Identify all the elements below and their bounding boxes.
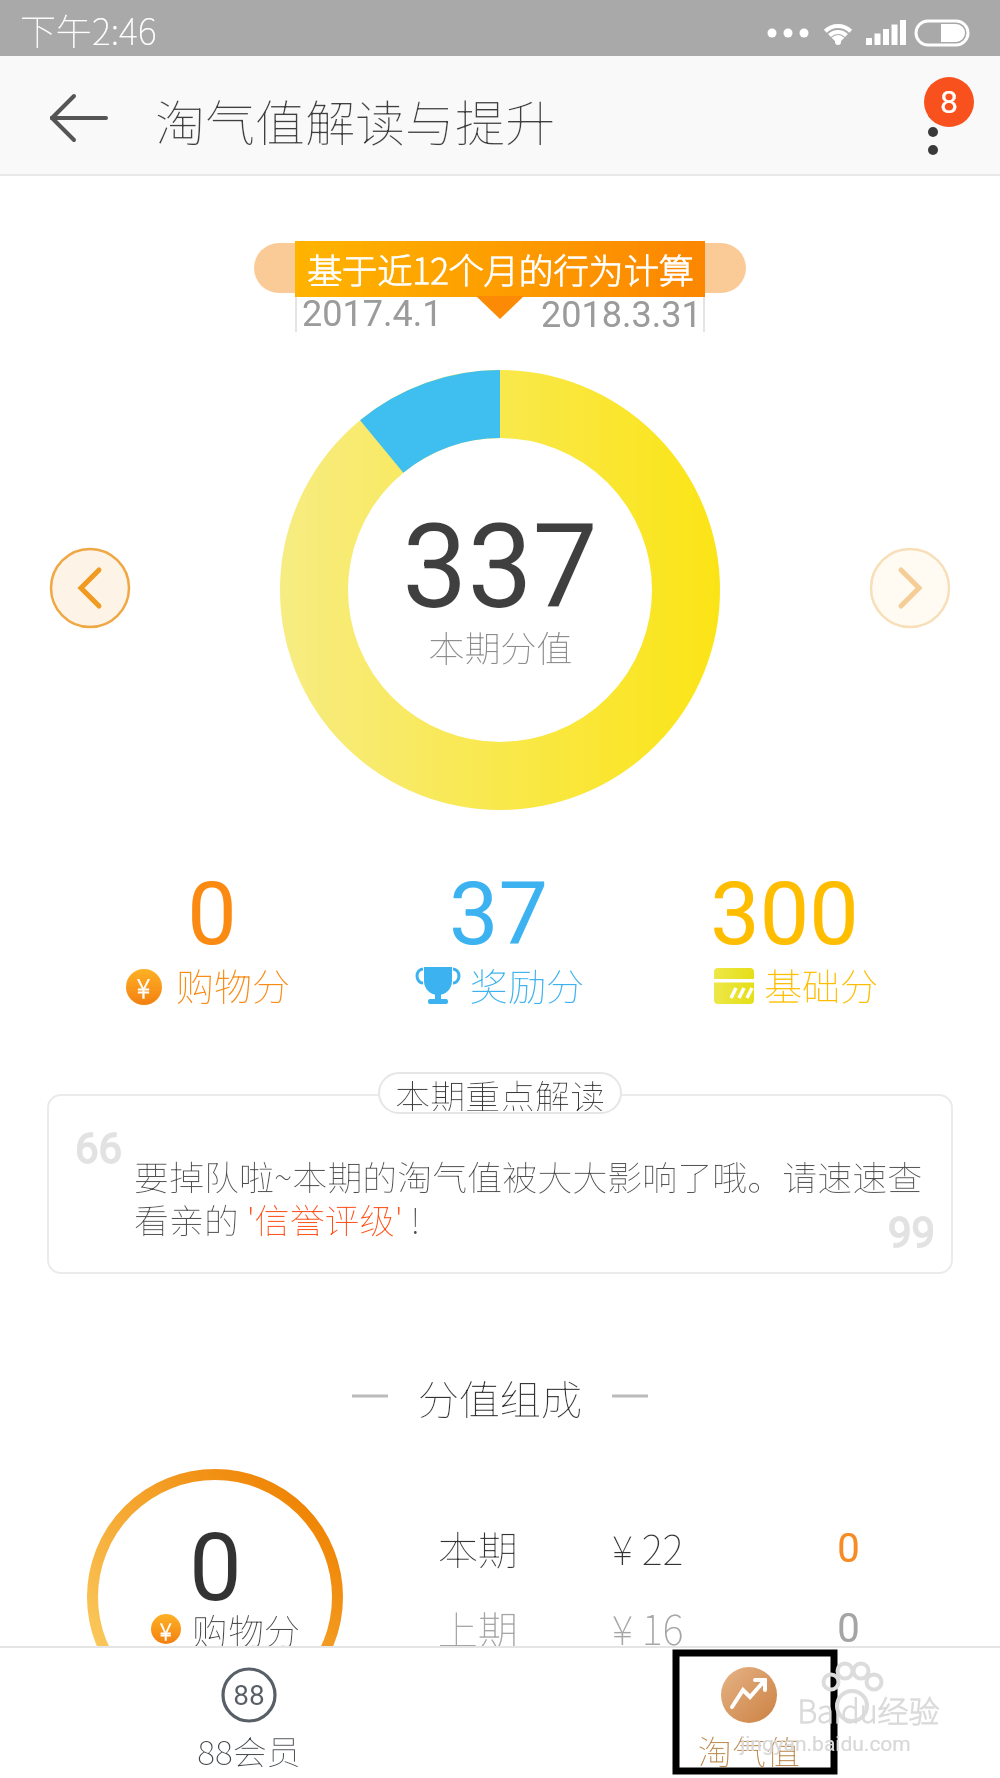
button[interactable]: 88 [149, 1648, 349, 1778]
staticText: 要掉队啦~本期的淘气值被大大影响了哦。请速速查 [134, 1150, 923, 1198]
staticText: 8 [940, 83, 958, 121]
staticText: ¥ [160, 1614, 172, 1644]
staticText: 本期分值 [428, 620, 573, 672]
staticText: 基于近12个月的行为计算 [307, 243, 694, 294]
staticText: 基础分 [764, 957, 879, 1012]
staticText: 看亲的 '信誉评级' ! [134, 1193, 421, 1241]
staticText: 分值组成 [418, 1367, 582, 1426]
staticText: 88 [233, 1679, 265, 1712]
staticText: 0 [189, 1513, 242, 1623]
staticText: 337 [402, 499, 598, 635]
staticText: 0 [837, 1525, 860, 1572]
staticText: 淘气值 [698, 1726, 800, 1775]
staticText: 上期 [438, 1599, 518, 1657]
button[interactable] [47, 1094, 953, 1274]
staticText: Baidu经验 [797, 1687, 940, 1732]
staticText: 购物分 [192, 1603, 301, 1655]
staticText: 2018.3.31 [541, 294, 702, 336]
staticText: 淘气值解读与提升 [155, 84, 555, 156]
staticText: jingyan.baidu.com [740, 1732, 911, 1757]
staticText: 99 [888, 1208, 936, 1257]
staticText: 下午2:46 [20, 3, 157, 55]
button[interactable] [30, 86, 120, 150]
staticText: 37 [449, 862, 548, 965]
staticText: 2017.4.1 [302, 293, 443, 335]
staticText: 购物分 [176, 957, 291, 1012]
button[interactable]: 淘气值 [649, 1648, 849, 1778]
button[interactable]: 8 [900, 66, 990, 166]
staticText: 奖励分 [470, 957, 585, 1012]
staticText: ¥ 16 [612, 1599, 684, 1657]
staticText: ¥ 22 [612, 1519, 684, 1577]
staticText: ¥ [137, 969, 151, 1005]
staticText: 0 [187, 862, 237, 965]
staticText: 本期 [438, 1519, 518, 1577]
staticText: 88会员 [197, 1726, 301, 1775]
staticText: 300 [710, 862, 859, 965]
button[interactable] [50, 548, 130, 628]
staticText: 本期重点解读 [395, 1069, 606, 1111]
button[interactable] [870, 548, 950, 628]
staticText: 0 [837, 1605, 860, 1652]
staticText: 66 [75, 1124, 123, 1173]
